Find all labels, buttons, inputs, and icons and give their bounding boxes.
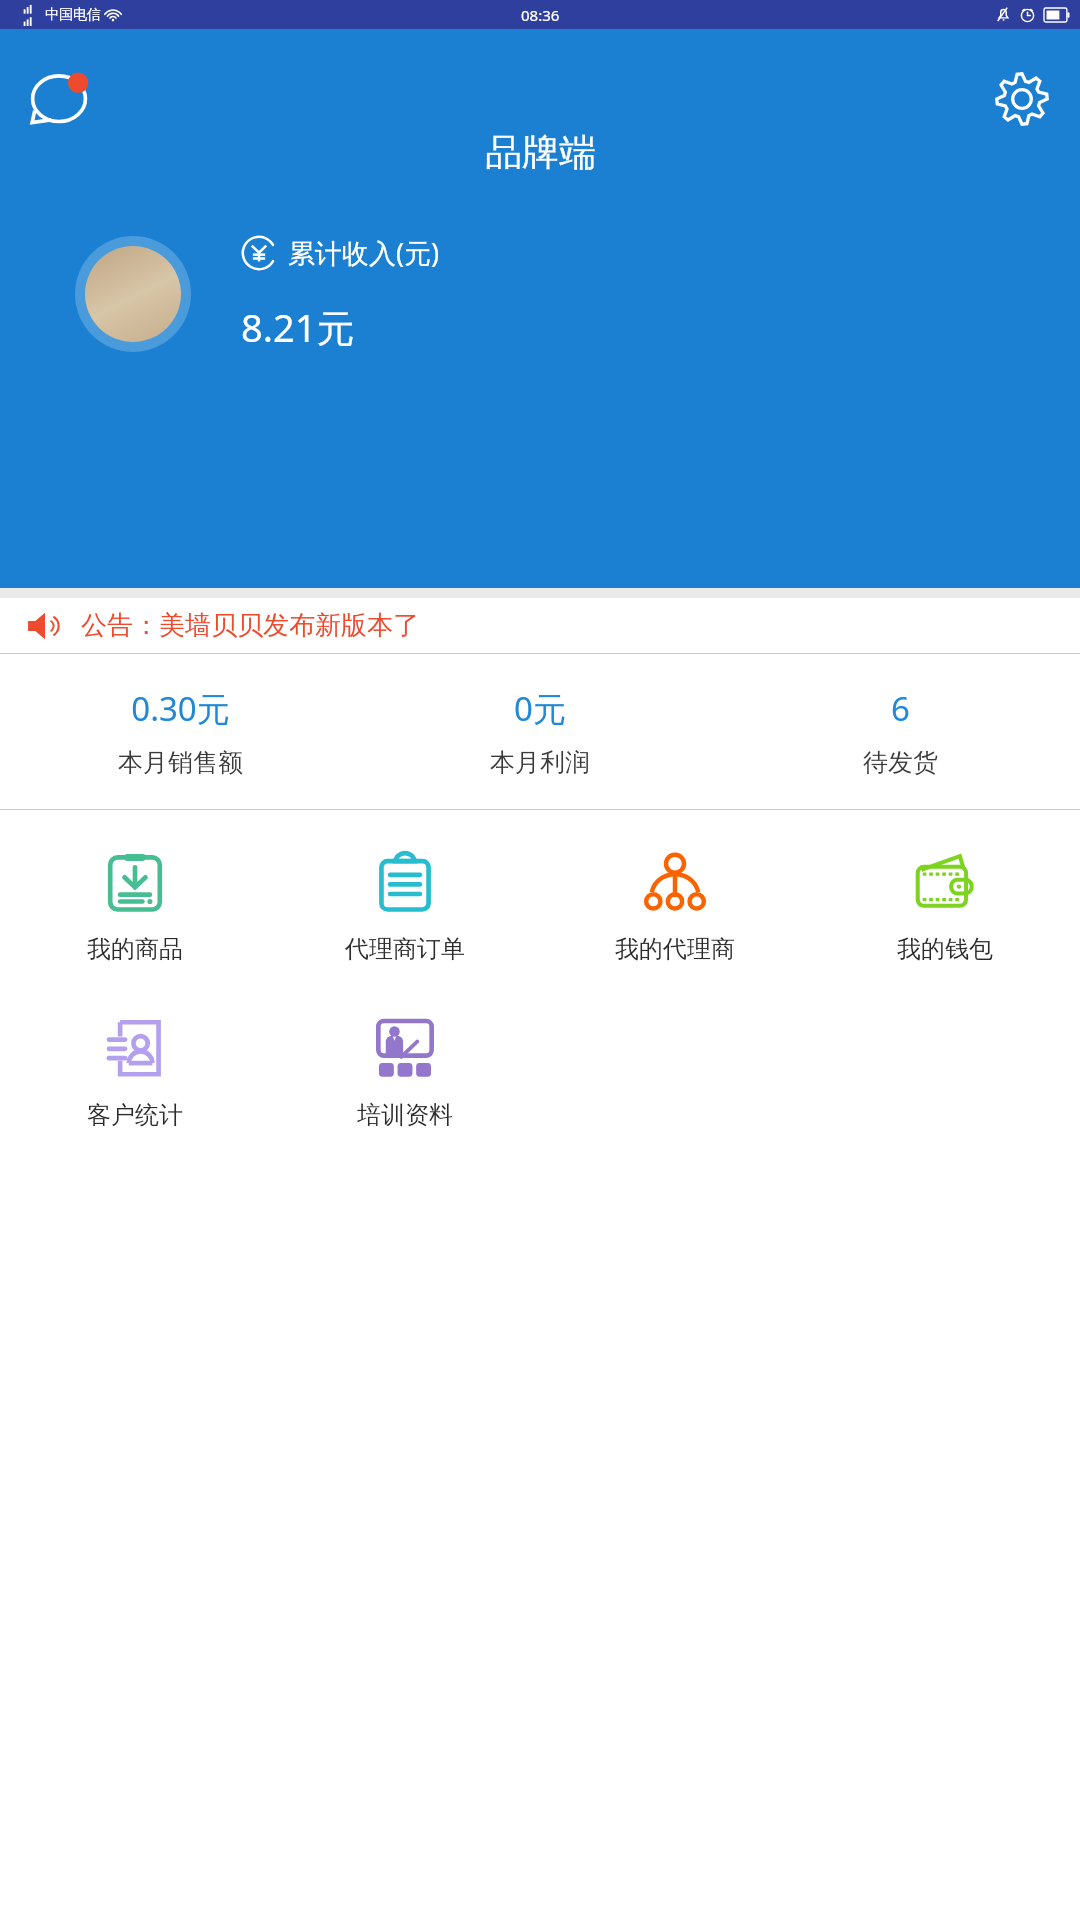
- staticText: 我的钱包: [897, 934, 993, 964]
- button[interactable]: Settings: [992, 69, 1052, 129]
- staticText: 待发货: [863, 747, 938, 778]
- button[interactable]: Messages: [28, 67, 94, 133]
- button[interactable]: 0元: [360, 654, 720, 809]
- staticText: 培训资料: [357, 1100, 453, 1130]
- staticText: 我的商品: [87, 934, 183, 964]
- button[interactable]: 我的代理商: [540, 840, 810, 974]
- button[interactable]: 我的商品: [0, 840, 270, 974]
- button[interactable]: 代理商订单: [270, 840, 540, 974]
- button[interactable]: 我的钱包: [810, 840, 1080, 974]
- staticText: 代理商订单: [345, 934, 465, 964]
- button[interactable]: 公告：美墙贝贝发布新版本了: [0, 598, 1080, 653]
- button[interactable]: 客户统计: [0, 1006, 270, 1140]
- staticText: 0元: [514, 686, 566, 731]
- button[interactable]: 培训资料: [270, 1006, 540, 1140]
- staticText: 我的代理商: [615, 934, 735, 964]
- staticText: 累计收入(元): [288, 234, 440, 271]
- button[interactable]: Profile photo: [85, 246, 181, 342]
- staticText: 品牌端: [485, 129, 596, 176]
- staticText: 0.30元: [131, 686, 230, 731]
- staticText: 本月利润: [490, 747, 590, 778]
- staticText: 本月销售额: [118, 747, 243, 778]
- staticText: 08:36: [521, 5, 560, 25]
- staticText: 客户统计: [87, 1100, 183, 1130]
- staticText: 中国电信: [45, 6, 101, 24]
- staticText: 8.21元: [241, 301, 355, 353]
- button[interactable]: 0.30元: [0, 654, 360, 809]
- button[interactable]: 6: [720, 654, 1080, 809]
- staticText: 6: [891, 686, 910, 731]
- staticText: 公告：美墙贝贝发布新版本了: [81, 609, 419, 642]
